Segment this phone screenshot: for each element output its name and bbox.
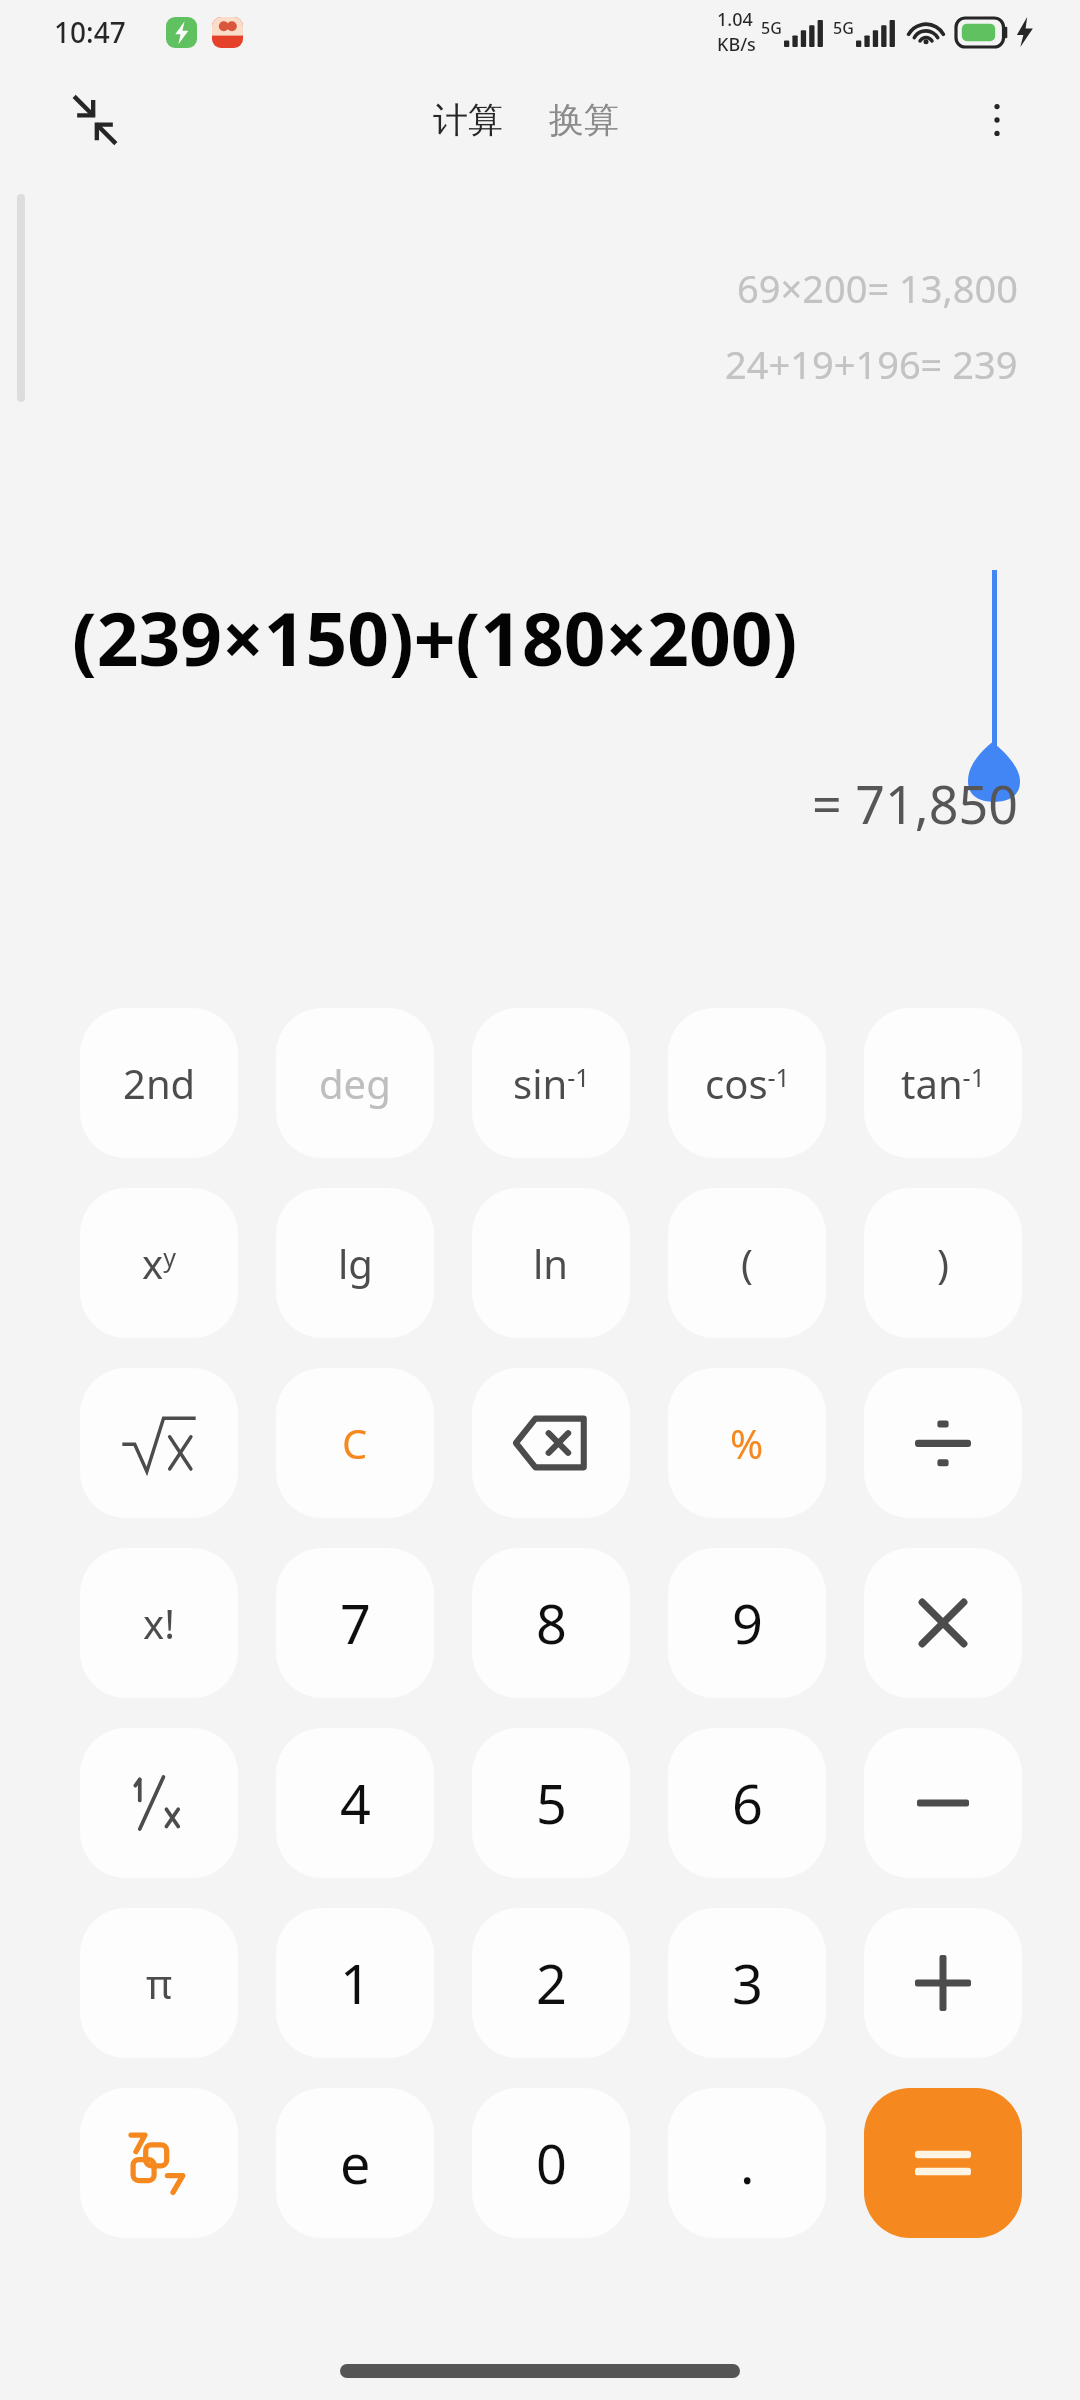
button[interactable]: . <box>668 2088 826 2238</box>
staticText: 24+19+196= 239 <box>725 338 1018 390</box>
button[interactable]: tan-1 <box>864 1008 1022 1158</box>
button[interactable]: More options <box>960 83 1034 157</box>
staticText: 10:47 <box>54 13 126 51</box>
staticText: ln <box>533 1236 569 1290</box>
button[interactable]: Square root <box>80 1368 238 1518</box>
staticText: KB/s <box>717 32 756 57</box>
staticText: lg <box>338 1236 373 1290</box>
staticText: 计算 <box>433 98 503 142</box>
button[interactable]: π <box>80 1908 238 2058</box>
button[interactable]: 1 <box>276 1908 434 2058</box>
staticText: . <box>740 2126 755 2200</box>
staticText: cos-1 <box>705 1056 790 1110</box>
button[interactable]: 7 <box>276 1548 434 1698</box>
button[interactable]: 5 <box>472 1728 630 1878</box>
staticText: π <box>146 1956 173 2010</box>
staticText: 5 <box>536 1766 567 1840</box>
staticText: % <box>730 1416 764 1470</box>
button[interactable]: 9 <box>668 1548 826 1698</box>
button[interactable]: Random number <box>80 2088 238 2238</box>
button[interactable]: 8 <box>472 1548 630 1698</box>
button[interactable]: Plus <box>864 1908 1022 2058</box>
staticText: = 71,850 <box>0 768 1018 839</box>
staticText: 2nd <box>123 1056 196 1110</box>
button[interactable]: Minus <box>864 1728 1022 1878</box>
button[interactable]: Backspace <box>472 1368 630 1518</box>
staticText: 4 <box>340 1766 371 1840</box>
staticText: 0 <box>536 2126 567 2200</box>
staticText: 2 <box>536 1946 567 2020</box>
staticText: sin-1 <box>513 1056 590 1110</box>
staticText: 5G <box>761 17 782 39</box>
staticText: x! <box>143 1596 175 1650</box>
button[interactable]: 计算 <box>421 86 515 154</box>
staticText: ) <box>937 1236 949 1290</box>
button[interactable]: 2nd <box>80 1008 238 1158</box>
staticText: xy <box>142 1236 176 1290</box>
staticText: 1.04 <box>717 7 753 32</box>
button[interactable]: Divide <box>864 1368 1022 1518</box>
button[interactable]: cos-1 <box>668 1008 826 1158</box>
button[interactable]: ln <box>472 1188 630 1338</box>
staticText: 69×200= 13,800 <box>737 262 1018 314</box>
staticText: 8 <box>536 1586 567 1660</box>
button[interactable]: C <box>276 1368 434 1518</box>
staticText: 5G <box>833 17 854 39</box>
staticText: 7 <box>340 1586 371 1660</box>
button[interactable]: deg <box>276 1008 434 1158</box>
button[interactable]: 4 <box>276 1728 434 1878</box>
button[interactable]: 3 <box>668 1908 826 2058</box>
button[interactable]: % <box>668 1368 826 1518</box>
button[interactable]: Collapse <box>58 83 132 157</box>
staticText: deg <box>319 1056 391 1110</box>
button[interactable]: ( <box>668 1188 826 1338</box>
button[interactable]: ) <box>864 1188 1022 1338</box>
staticText: 1 <box>340 1946 371 2020</box>
staticText: C <box>342 1416 368 1470</box>
button[interactable]: e <box>276 2088 434 2238</box>
button[interactable]: lg <box>276 1188 434 1338</box>
staticText: ( <box>741 1236 753 1290</box>
button[interactable]: 2 <box>472 1908 630 2058</box>
button[interactable]: xy <box>80 1188 238 1338</box>
staticText: 9 <box>732 1586 763 1660</box>
staticText: e <box>340 2126 371 2200</box>
staticText: (239×150)+(180×200) <box>72 588 798 687</box>
button[interactable]: 6 <box>668 1728 826 1878</box>
button[interactable] <box>864 2088 1022 2238</box>
button[interactable]: 换算 <box>537 86 631 154</box>
staticText: 换算 <box>549 98 619 142</box>
staticText: 3 <box>732 1946 763 2020</box>
button[interactable]: 0 <box>472 2088 630 2238</box>
button[interactable]: sin-1 <box>472 1008 630 1158</box>
button[interactable] <box>80 1728 238 1878</box>
button[interactable]: x! <box>80 1548 238 1698</box>
staticText: tan-1 <box>901 1056 985 1110</box>
staticText: 6 <box>732 1766 763 1840</box>
button[interactable]: Multiply <box>864 1548 1022 1698</box>
